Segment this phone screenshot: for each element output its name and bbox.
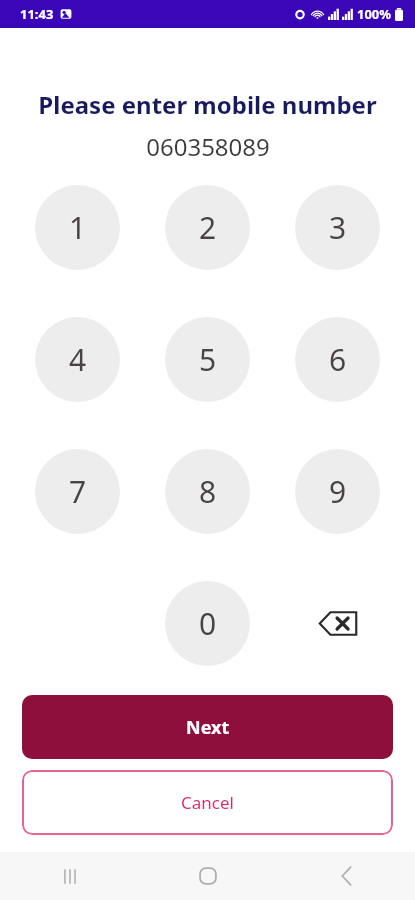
staticText: 0 (199, 603, 217, 644)
button[interactable]: 3 (295, 185, 380, 270)
staticText: 100% (357, 5, 392, 23)
staticText: 3 (329, 207, 347, 248)
button[interactable]: 7 (35, 449, 120, 534)
button[interactable]: 4 (35, 317, 120, 402)
button[interactable]: 9 (295, 449, 380, 534)
staticText: 5 (199, 339, 217, 380)
button[interactable]: 0 (165, 581, 250, 666)
staticText: 1 (69, 207, 87, 248)
button[interactable]: Recent apps (0, 852, 139, 900)
staticText: 6 (329, 339, 347, 380)
staticText: 11:43 (20, 5, 54, 23)
button[interactable]: 1 (35, 185, 120, 270)
staticText: Cancel (181, 791, 234, 814)
staticText: Please enter mobile number (38, 88, 377, 121)
button[interactable]: 5 (165, 317, 250, 402)
button[interactable]: Backspace (295, 581, 380, 666)
staticText: Next (186, 715, 230, 740)
staticText: 2 (199, 207, 217, 248)
button[interactable]: Home (139, 852, 277, 900)
staticText: 8 (199, 471, 217, 512)
button[interactable]: Cancel (22, 770, 393, 835)
button[interactable]: Back (277, 852, 415, 900)
button[interactable]: 2 (165, 185, 250, 270)
staticText: 9 (329, 471, 347, 512)
button[interactable]: 6 (295, 317, 380, 402)
staticText: 4 (69, 339, 87, 380)
button[interactable]: 8 (165, 449, 250, 534)
staticText: 060358089 (146, 130, 270, 163)
button[interactable]: Next (22, 695, 393, 759)
staticText: 7 (69, 471, 87, 512)
